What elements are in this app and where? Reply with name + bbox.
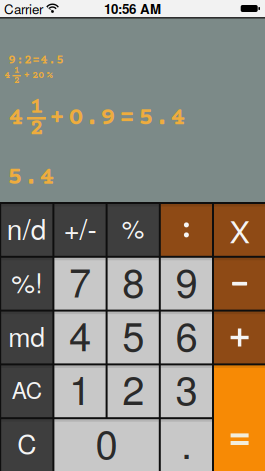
button[interactable]: % <box>108 204 159 256</box>
button[interactable]: 6 <box>161 312 212 363</box>
staticText: 5 <box>122 305 144 363</box>
button[interactable]: %! <box>1 258 52 310</box>
staticText: 1 <box>69 359 91 416</box>
staticText: AC <box>12 373 42 406</box>
staticText: + <box>49 103 65 133</box>
staticText: = <box>119 103 135 133</box>
staticText: 9 <box>175 252 197 309</box>
staticText: 20 <box>32 70 44 82</box>
staticText: 10:56 AM <box>104 0 161 18</box>
button[interactable]: 9 <box>161 258 212 310</box>
button[interactable]: md <box>1 312 52 363</box>
staticText: 4 <box>8 103 24 133</box>
staticText: 7 <box>69 252 91 309</box>
staticText: 2 <box>14 75 20 86</box>
button[interactable] <box>161 204 212 256</box>
staticText: 3 <box>175 359 197 416</box>
staticText: 8 <box>122 252 144 309</box>
staticText: 4 <box>69 305 91 363</box>
staticText: + <box>23 70 29 82</box>
button[interactable]: 7 <box>54 258 106 310</box>
staticText: 6 <box>175 305 197 363</box>
staticText: 2 <box>29 116 43 143</box>
staticText: 5.4 <box>138 103 186 133</box>
staticText: % <box>122 210 145 246</box>
button[interactable]: 0 <box>54 419 159 471</box>
staticText: . <box>181 413 192 470</box>
button[interactable]: C <box>1 419 52 471</box>
button[interactable] <box>214 312 265 363</box>
button[interactable]: 1 <box>54 365 106 417</box>
button[interactable]: n/d <box>1 204 52 256</box>
staticText: 5.4 <box>7 163 55 193</box>
button[interactable] <box>214 365 265 471</box>
staticText: %! <box>11 263 42 301</box>
staticText: 9:2=4.5 <box>8 53 64 68</box>
staticText: Carrier <box>4 0 43 18</box>
button[interactable]: 3 <box>161 365 212 417</box>
button[interactable]: 4 <box>54 312 106 363</box>
button[interactable]: AC <box>1 365 52 417</box>
button[interactable]: . <box>161 419 212 471</box>
button[interactable]: 2 <box>108 365 159 417</box>
button[interactable] <box>214 258 265 310</box>
staticText: 0.9 <box>68 103 116 133</box>
staticText: 0 <box>96 413 118 470</box>
button[interactable]: 8 <box>108 258 159 310</box>
staticText: n/d <box>7 208 47 248</box>
staticText: X <box>230 208 250 252</box>
staticText: 1 <box>14 65 20 76</box>
staticText: +/- <box>63 208 96 248</box>
staticText: 4 <box>4 70 10 82</box>
button[interactable]: X <box>214 204 265 256</box>
staticText: md <box>8 316 45 355</box>
staticText: % <box>46 70 52 82</box>
staticText: 2 <box>122 359 144 416</box>
staticText: C <box>17 424 36 462</box>
button[interactable]: 5 <box>108 312 159 363</box>
staticText: 1 <box>29 94 43 121</box>
button[interactable]: +/- <box>54 204 106 256</box>
